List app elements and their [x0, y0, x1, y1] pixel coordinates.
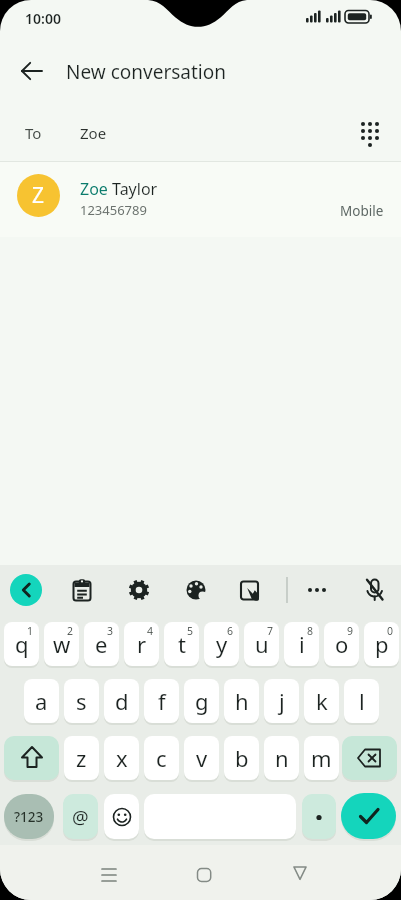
staticText: To	[25, 123, 42, 143]
staticText: 0	[387, 624, 394, 638]
staticText: y	[216, 629, 228, 659]
button[interactable]	[183, 854, 225, 896]
button[interactable]: a	[24, 679, 59, 723]
button[interactable]: n	[264, 736, 299, 780]
button[interactable]: m	[304, 736, 339, 780]
staticText: s	[76, 686, 87, 716]
button[interactable]: h	[224, 679, 259, 723]
staticText: 7	[267, 624, 274, 638]
button[interactable]: v	[184, 736, 219, 780]
staticText: 6	[227, 624, 234, 638]
staticText: z	[76, 743, 87, 773]
staticText: New conversation	[66, 59, 226, 85]
button[interactable]	[64, 572, 100, 608]
staticText: 5	[187, 624, 194, 638]
button[interactable]: b	[224, 736, 259, 780]
button[interactable]	[104, 794, 139, 839]
button[interactable]: p	[364, 622, 399, 666]
button[interactable]: x	[104, 736, 139, 780]
button[interactable]: g	[184, 679, 219, 723]
staticText: 4	[147, 624, 154, 638]
button[interactable]: l	[344, 679, 379, 723]
button[interactable]: q	[4, 622, 39, 666]
staticText: ?123	[14, 808, 44, 826]
button[interactable]	[121, 572, 157, 608]
button[interactable]: j	[264, 679, 299, 723]
button[interactable]: c	[144, 736, 179, 780]
staticText: o	[335, 629, 349, 659]
button[interactable]: @	[63, 794, 98, 839]
staticText: r	[137, 629, 147, 659]
button[interactable]	[356, 572, 392, 608]
staticText: n	[275, 743, 289, 773]
staticText: c	[156, 743, 167, 773]
staticText: x	[116, 743, 128, 773]
button[interactable]	[12, 51, 52, 91]
staticText: 1	[27, 624, 34, 638]
button[interactable]	[341, 793, 396, 839]
staticText: g	[195, 686, 209, 716]
staticText: 2	[67, 624, 74, 638]
button[interactable]	[342, 736, 397, 780]
button[interactable]: u	[244, 622, 279, 666]
button[interactable]: k	[304, 679, 339, 723]
staticText: @	[72, 804, 89, 829]
staticText: k	[316, 686, 328, 716]
button[interactable]: y	[204, 622, 239, 666]
button[interactable]	[279, 852, 321, 894]
staticText: Z	[32, 181, 45, 210]
button[interactable]: f	[144, 679, 179, 723]
staticText: i	[299, 629, 305, 659]
staticText: 9	[347, 624, 354, 638]
button[interactable]	[10, 574, 42, 606]
button[interactable]	[299, 572, 335, 608]
staticText: 8	[307, 624, 314, 638]
staticText: j	[279, 686, 285, 716]
staticText: q	[15, 629, 29, 659]
button[interactable]: t	[164, 622, 199, 666]
button[interactable]: z	[64, 736, 99, 780]
staticText: 123456789	[80, 201, 147, 219]
button[interactable]: To	[0, 105, 401, 161]
button[interactable]	[4, 736, 59, 780]
staticText: b	[235, 743, 249, 773]
staticText: w	[53, 629, 71, 659]
staticText: u	[255, 629, 269, 659]
staticText: Zoe Taylor	[80, 178, 158, 200]
staticText: v	[196, 743, 208, 773]
button[interactable]	[88, 854, 130, 896]
button[interactable]: ?123	[4, 794, 54, 839]
staticText: t	[178, 629, 186, 659]
button[interactable]: e	[84, 622, 119, 666]
staticText: p	[375, 629, 389, 659]
button[interactable]: d	[104, 679, 139, 723]
staticText: 3	[107, 624, 114, 638]
staticText: Zoe	[80, 123, 107, 143]
button[interactable]	[232, 572, 268, 608]
staticText: d	[115, 686, 129, 716]
button[interactable]	[302, 794, 336, 839]
button[interactable]: s	[64, 679, 99, 723]
button[interactable]: w	[44, 622, 79, 666]
staticText: f	[158, 686, 166, 716]
button[interactable]	[349, 112, 391, 154]
staticText: h	[235, 686, 249, 716]
staticText: a	[35, 686, 48, 716]
staticText: l	[359, 686, 365, 716]
staticText: 10:00	[25, 9, 61, 28]
staticText: Mobile	[340, 202, 384, 220]
button[interactable]: Z	[0, 162, 401, 237]
button[interactable]	[178, 572, 214, 608]
button[interactable]: o	[324, 622, 359, 666]
button[interactable]: i	[284, 622, 319, 666]
button[interactable]: r	[124, 622, 159, 666]
button[interactable]	[144, 794, 296, 839]
staticText: e	[95, 629, 108, 659]
staticText: m	[311, 743, 332, 773]
